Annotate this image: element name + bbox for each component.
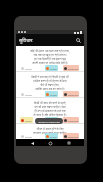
button[interactable]: Favourite	[20, 91, 33, 97]
button[interactable]: Recents	[66, 140, 72, 146]
button[interactable]: Download	[63, 65, 79, 71]
button[interactable]: Favourite	[20, 65, 33, 71]
staticText: Favourite	[25, 93, 33, 96]
staticText: धैर्य भी रखना होगा,	[28, 83, 72, 87]
button[interactable]: Download	[63, 117, 79, 123]
staticText: जीवन में सफल होने के लिए	[28, 127, 72, 131]
staticText: सुविचार	[19, 37, 33, 44]
button[interactable]: Back	[29, 140, 35, 146]
staticText: Added to favourite	[38, 120, 60, 123]
staticText: Share	[50, 93, 57, 96]
staticText: कोई भी इंसान उस वक़्त तक नहीं हारता,	[28, 49, 72, 53]
staticText: किसी ने सच कहा है जिंदगी में कुछ भी	[28, 75, 72, 79]
button[interactable]: Share	[45, 91, 58, 97]
staticText: Share	[50, 135, 57, 138]
staticText: किसी भी काम को करने से पहले,	[28, 101, 72, 105]
button[interactable]: Favourite	[20, 133, 33, 139]
staticText: जब तक वह खुद हार नहीं मानता।	[28, 53, 72, 57]
staticText: Favourite	[25, 119, 33, 122]
staticText: हार तब मिलती है जब इंसान खुद	[28, 57, 72, 61]
button[interactable]: Search	[74, 36, 82, 44]
staticText: Download	[68, 135, 79, 138]
staticText: Download	[68, 119, 79, 122]
button[interactable]: Favourite	[20, 117, 33, 123]
staticText: ही मन हमें सफलता के मार्ग तक	[28, 109, 72, 113]
staticText: Favourite	[25, 135, 33, 138]
staticText: Download	[68, 67, 79, 70]
button[interactable]: Home	[47, 140, 53, 146]
button[interactable]: Download	[63, 133, 79, 139]
staticText: Download	[68, 93, 79, 96]
staticText: अपनी ताकत पर भरोसा छोड़ देता है।	[28, 61, 72, 65]
staticText: मन को शांत रखना चाहिए। ऐसा	[28, 105, 72, 109]
staticText: हासिल करना है तो मेहनत के साथ	[28, 79, 72, 83]
button[interactable]: Share	[45, 133, 58, 139]
staticText: क्योंकि समय सब का आता है।	[28, 87, 72, 91]
staticText: Share	[50, 67, 57, 70]
button[interactable]: Download	[63, 91, 79, 97]
button[interactable]: Share	[45, 117, 58, 123]
staticText: Favourite	[25, 67, 33, 70]
button[interactable]: Share	[45, 65, 58, 71]
staticText: लगातार प्रयास करते रहना चाहिए।	[28, 131, 72, 135]
staticText: ले जाता है और मंजिल दिलाता है।	[28, 113, 72, 117]
